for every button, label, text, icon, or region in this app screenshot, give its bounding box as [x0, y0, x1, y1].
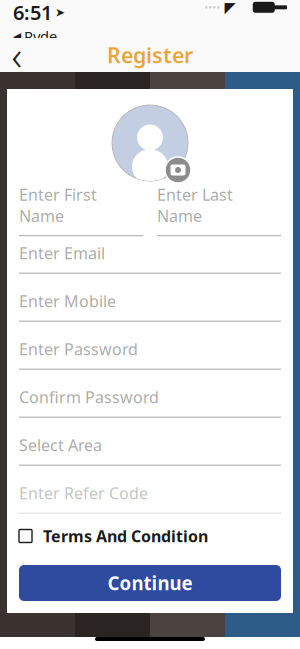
staticText: Enter Mobile: [19, 290, 116, 312]
staticText: ‹: [11, 28, 22, 81]
button[interactable]: Enter Mobile: [19, 293, 281, 319]
button[interactable]: Enter Last Name: [157, 197, 281, 223]
staticText: Enter Password: [19, 338, 138, 360]
staticText: Continue: [107, 571, 192, 595]
staticText: Confirm Password: [19, 386, 159, 408]
staticText: Terms And Condition: [43, 525, 208, 547]
staticText: 6:51: [13, 0, 52, 26]
button[interactable]: Enter Refer Code: [19, 485, 281, 511]
button[interactable]: Terms And Condition: [19, 525, 281, 547]
staticText: Enter Last Name: [157, 184, 233, 226]
button[interactable]: Change profile photo: [108, 101, 192, 185]
staticText: Enter First Name: [19, 184, 97, 226]
staticText: Enter Refer Code: [19, 482, 148, 504]
staticText: ◀: [13, 30, 21, 42]
button[interactable]: Enter Email: [19, 245, 281, 271]
button[interactable]: Confirm Password: [19, 389, 281, 415]
staticText: Ryde: [24, 26, 57, 46]
staticText: ◤: [224, 0, 235, 16]
button[interactable]: Enter First Name: [19, 197, 143, 223]
button[interactable]: Continue: [19, 565, 281, 601]
staticText: Register: [107, 41, 193, 69]
staticText: Select Area: [19, 434, 102, 456]
button[interactable]: Select Area: [19, 437, 281, 463]
button[interactable]: Enter Password: [19, 341, 281, 367]
staticText: ➤: [55, 5, 65, 19]
button[interactable]: Back: [0, 38, 39, 72]
staticText: Enter Email: [19, 242, 105, 264]
